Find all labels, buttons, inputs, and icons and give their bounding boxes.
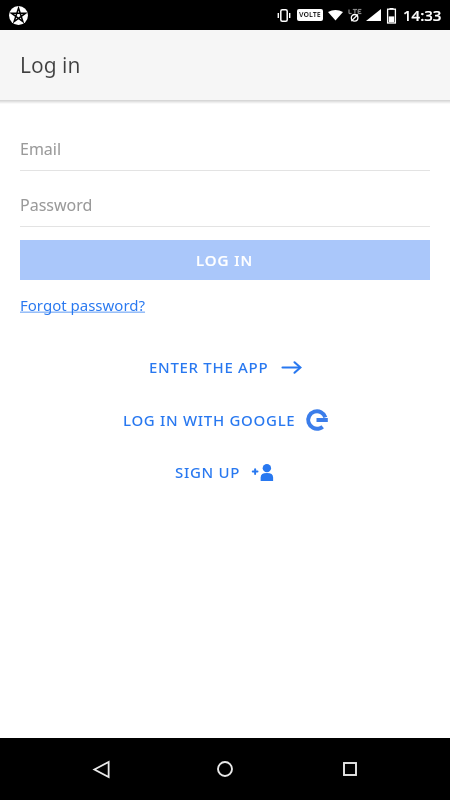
- button[interactable]: Sign up: [0, 458, 450, 486]
- button[interactable]: Email: [20, 128, 430, 184]
- button[interactable]: Enter the app: [0, 353, 450, 381]
- button[interactable]: Password: [20, 184, 430, 240]
- staticText: Log in: [20, 51, 81, 80]
- staticText: Forgot password?: [20, 295, 146, 315]
- button[interactable]: LOG IN: [20, 240, 430, 280]
- staticText: SIGN UP: [175, 462, 241, 482]
- staticText: VOLTE: [299, 10, 321, 20]
- button[interactable]: Recent apps: [326, 745, 374, 793]
- staticText: LOG IN: [196, 250, 254, 270]
- button[interactable]: Back: [77, 745, 125, 793]
- button[interactable]: Forgot password?: [20, 295, 146, 315]
- button[interactable]: Log in with Google: [0, 406, 450, 434]
- staticText: 14:33: [403, 5, 442, 25]
- staticText: ENTER THE APP: [149, 357, 269, 377]
- button[interactable]: Home: [201, 745, 249, 793]
- staticText: Password: [20, 194, 93, 216]
- staticText: Email: [20, 138, 62, 160]
- staticText: LOG IN WITH GOOGLE: [123, 410, 296, 430]
